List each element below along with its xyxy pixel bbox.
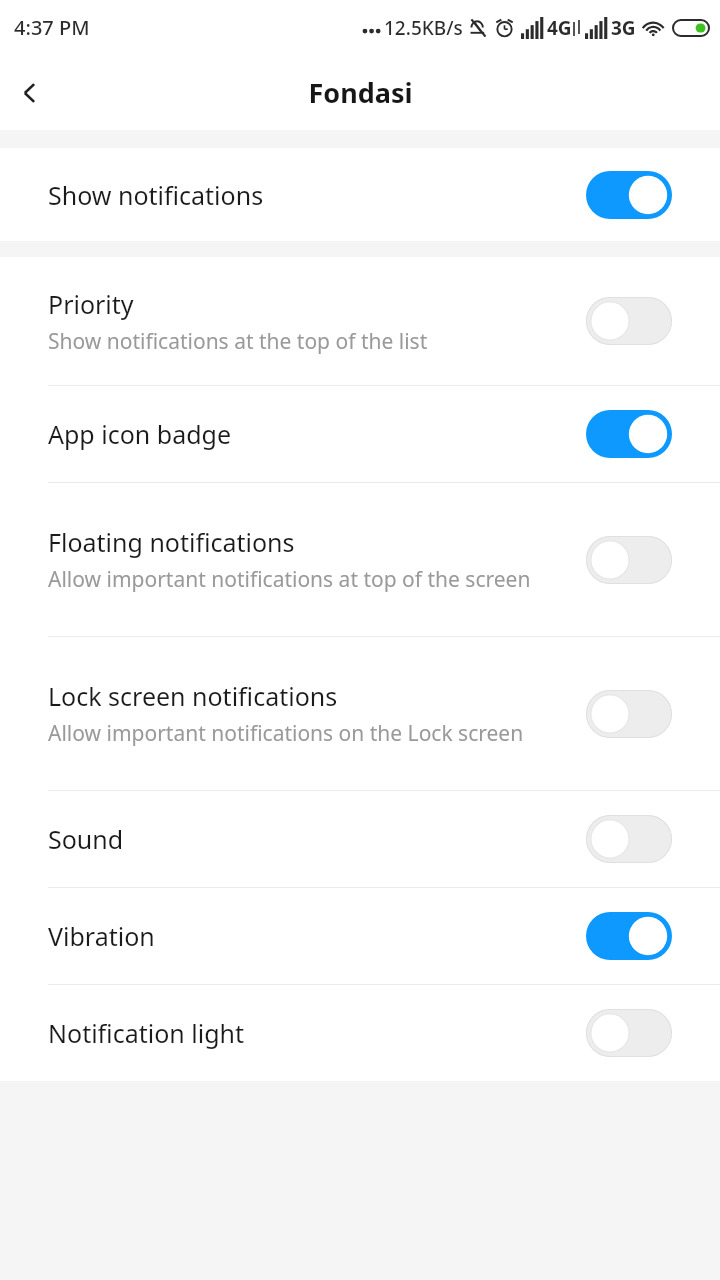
staticText: Allow important notifications at top of …: [48, 565, 531, 594]
staticText: Priority: [48, 287, 134, 321]
button[interactable]: Off: [586, 536, 672, 584]
staticText: 4:37 PM: [14, 14, 90, 41]
staticText: App icon badge: [48, 417, 232, 451]
staticText: Sound: [48, 822, 124, 856]
button[interactable]: Lock screen notifications: [0, 637, 720, 790]
button[interactable]: Priority: [0, 257, 720, 385]
staticText: Floating notifications: [48, 525, 295, 559]
button[interactable]: Off: [586, 297, 672, 345]
button[interactable]: App icon badge: [0, 386, 720, 482]
staticText: Allow important notifications on the Loc…: [48, 719, 524, 748]
button[interactable]: Vibration: [0, 888, 720, 984]
button[interactable]: Back: [0, 63, 60, 123]
button[interactable]: Notification light: [0, 985, 720, 1081]
button[interactable]: Floating notifications: [0, 483, 720, 636]
staticText: Notification light: [48, 1016, 244, 1050]
staticText: Lock screen notifications: [48, 679, 338, 713]
button[interactable]: On: [586, 410, 672, 458]
staticText: 4G: [547, 15, 572, 41]
button[interactable]: Off: [586, 1009, 672, 1057]
button[interactable]: Off: [586, 690, 672, 738]
button[interactable]: On: [586, 912, 672, 960]
staticText: Fondasi: [308, 74, 413, 111]
button[interactable]: Sound: [0, 791, 720, 887]
staticText: Show notifications at the top of the lis…: [48, 327, 428, 356]
staticText: 12.5KB/s: [384, 15, 463, 41]
staticText: Vibration: [48, 919, 155, 953]
button[interactable]: Off: [586, 815, 672, 863]
button[interactable]: Show notifications: [0, 148, 720, 241]
staticText: Show notifications: [48, 178, 264, 212]
button[interactable]: On: [586, 171, 672, 219]
staticText: 3G: [611, 15, 636, 41]
